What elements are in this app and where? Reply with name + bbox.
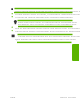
staticText: Duis aute irure dolor in reprehenderit v… bbox=[18, 20, 77, 23]
staticText: Learn more about how we protect your dat… bbox=[15, 9, 80, 12]
staticText: Ut enim ad minim veniam quis nostrud exe… bbox=[15, 15, 73, 18]
staticText: Lorem ipsum dolor sit amet, consectetur … bbox=[15, 12, 80, 15]
staticText: Sed ut perspiciatis unde omnis iste natu… bbox=[15, 26, 80, 29]
staticText: Terms Privacy bbox=[60, 95, 77, 98]
staticText: Excepteur sint occaecat cupidatat non pr… bbox=[18, 22, 77, 25]
staticText: Help bbox=[10, 95, 16, 98]
staticText: Neque porro quisquam est qui dolorem ips… bbox=[18, 34, 80, 37]
staticText: Quis autem vel eum iure reprehenderit qu… bbox=[15, 37, 76, 40]
button[interactable]: Feedback bbox=[72, 44, 79, 61]
staticText: Nemo enim ipsam voluptatem quia voluptas… bbox=[15, 29, 80, 32]
